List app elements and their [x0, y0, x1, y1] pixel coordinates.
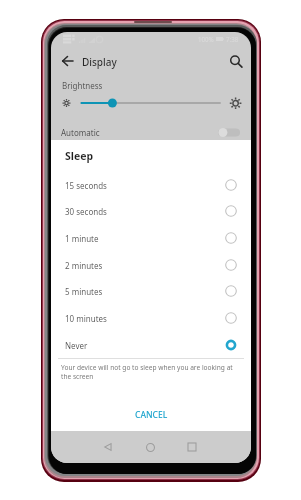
staticText: Never [65, 340, 251, 351]
button[interactable]: Back [98, 437, 118, 457]
button[interactable]: 15 seconds [51, 172, 251, 199]
staticText: Display [82, 55, 117, 69]
button[interactable]: 1 minute [51, 225, 251, 252]
button[interactable]: Automatic brightness [218, 128, 240, 137]
staticText: 1 minute [65, 233, 251, 244]
button[interactable]: 30 seconds [51, 198, 251, 225]
staticText: Your device will not go to sleep when yo… [61, 363, 239, 381]
staticText: CANCEL [135, 409, 168, 421]
button[interactable]: 10 minutes [51, 305, 251, 332]
button[interactable]: Recent apps [182, 437, 202, 457]
button[interactable]: Search [225, 51, 245, 71]
staticText: Sleep [65, 149, 94, 163]
button[interactable]: Never [51, 332, 251, 359]
button[interactable]: CANCEL [51, 405, 251, 425]
button[interactable]: 5 minutes [51, 278, 251, 305]
button[interactable]: 2 minutes [51, 252, 251, 279]
staticText: 100% [198, 35, 214, 43]
staticText: 2 minutes [65, 260, 251, 271]
staticText: 7:38 [226, 35, 239, 43]
staticText: Brightness [62, 80, 103, 91]
staticText: Automatic [61, 127, 100, 138]
button[interactable]: Back [57, 51, 77, 71]
button[interactable]: Home [140, 437, 160, 457]
staticText: 15 seconds [65, 180, 251, 191]
staticText: 5 minutes [65, 286, 251, 297]
staticText: 30 seconds [65, 206, 251, 217]
staticText: 10 minutes [65, 313, 251, 324]
